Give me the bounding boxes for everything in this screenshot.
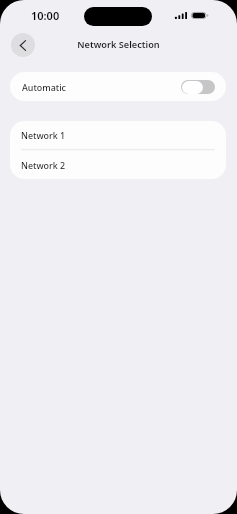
staticText: Network Selection xyxy=(0,38,237,51)
staticText: Network 1 xyxy=(21,129,66,141)
button[interactable]: Back xyxy=(11,33,35,57)
staticText: 10:00 xyxy=(31,8,60,23)
button[interactable]: Network 2 xyxy=(10,151,226,179)
staticText: Automatic xyxy=(22,81,66,93)
staticText: Network 2 xyxy=(21,159,66,171)
button[interactable]: Automatic xyxy=(10,72,226,101)
button[interactable]: Network 1 xyxy=(10,121,226,149)
